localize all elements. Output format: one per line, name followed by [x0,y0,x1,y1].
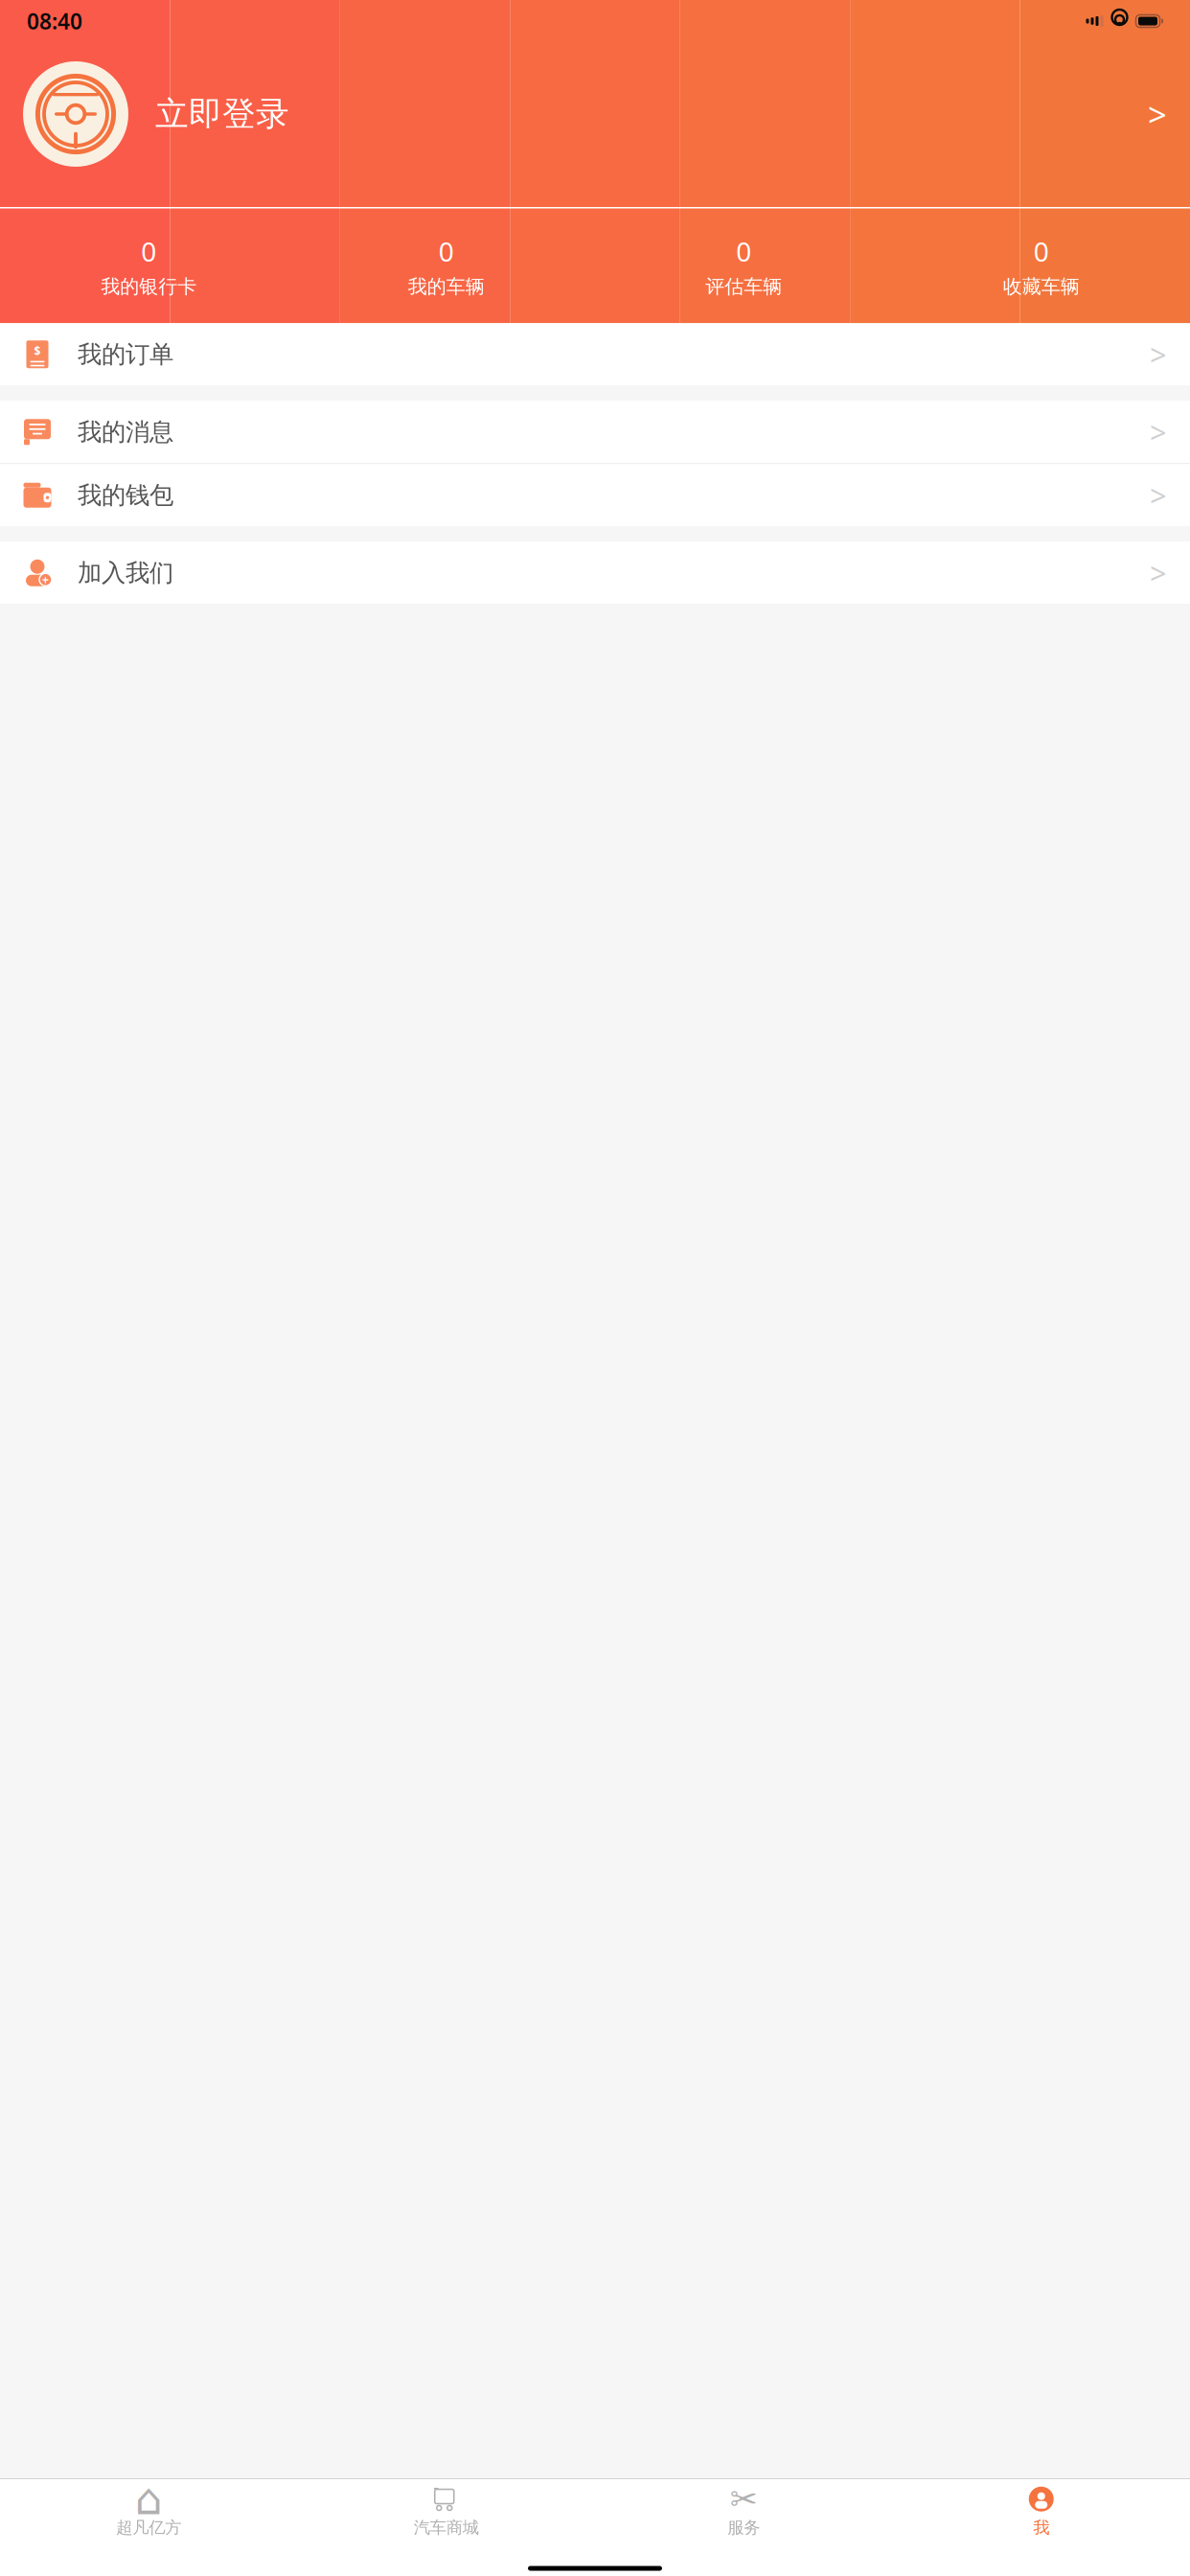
staticText: > [1150,553,1167,592]
button[interactable]: 0 [595,220,892,312]
staticText: $ [34,343,41,359]
staticText: 汽车商城 [414,2517,479,2538]
staticText: ✂ [730,2480,758,2518]
button[interactable]: 我 [892,2479,1190,2543]
staticText: 0 [141,233,156,269]
button[interactable]: $ [0,323,1190,385]
staticText: > [1150,476,1167,515]
button[interactable]: 我的钱包 [0,464,1190,526]
staticText: 我的订单 [78,339,173,369]
staticText: + [42,572,49,587]
staticText: 我的银行卡 [101,275,197,298]
button[interactable]: 0 [892,220,1190,312]
button[interactable]: ⌂ [0,2479,297,2543]
staticText: > [1150,412,1167,451]
staticText: 服务 [727,2517,760,2538]
staticText: 我的钱包 [78,480,173,510]
staticText: > [1148,92,1167,136]
staticText: 我 [1033,2517,1049,2538]
staticText: 08:40 [27,7,82,35]
button[interactable]: + [0,542,1190,604]
staticText: 立即登录 [155,94,289,134]
staticText: 加入我们 [78,558,173,588]
staticText: > [1150,335,1167,374]
button[interactable]: 0 [0,220,297,312]
staticText: 超凡亿方 [116,2517,181,2538]
button[interactable]: 汽车商城 [297,2479,595,2543]
staticText: 0 [439,233,454,269]
staticText: 0 [736,233,751,269]
staticText: 我的车辆 [408,275,485,298]
staticText: ⌂ [135,2474,163,2524]
button[interactable]: 0 [297,220,595,312]
staticText: 评估车辆 [705,275,782,298]
staticText: 收藏车辆 [1003,275,1080,298]
staticText: 0 [1034,233,1049,269]
button[interactable]: 我的消息 [0,401,1190,463]
button[interactable]: 立即登录 [0,42,1190,186]
button[interactable]: ✂ [595,2479,892,2543]
staticText: 我的消息 [78,417,173,447]
